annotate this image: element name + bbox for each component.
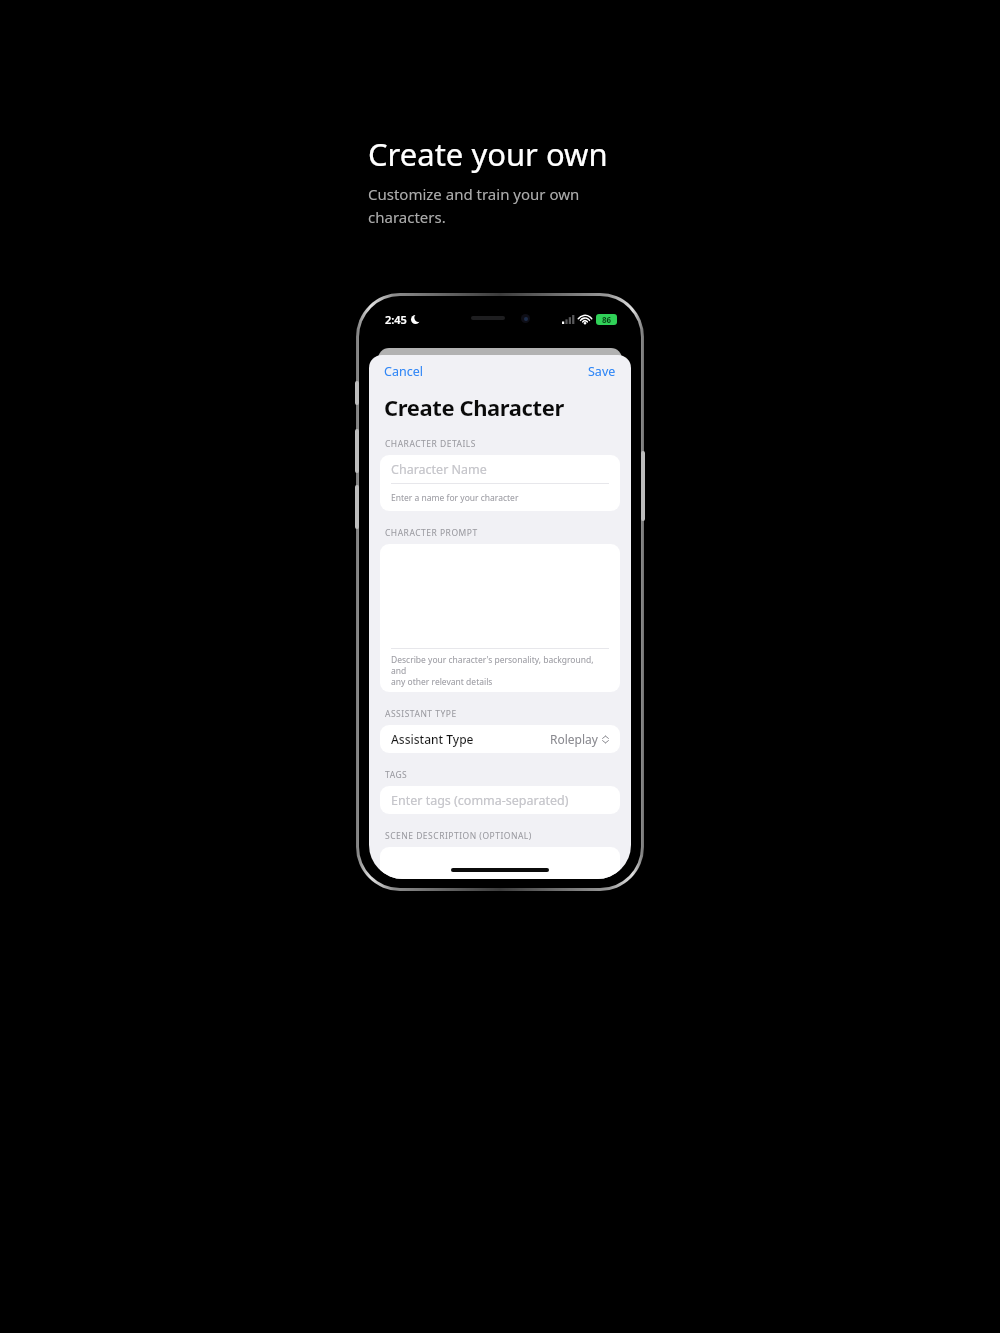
staticText: Create your own [368,133,608,175]
staticText: Roleplay [550,731,598,747]
staticText: Describe your character's personality, b… [391,654,609,687]
staticText: CHARACTER PROMPT [385,527,478,539]
staticText: Assistant Type [391,731,474,747]
staticText: Cancel [384,363,423,380]
staticText: TAGS [385,769,408,781]
other: Volume up [355,429,359,473]
staticText: Save [588,363,616,380]
other: Power [641,451,645,521]
other: Volume down [355,485,359,529]
button[interactable]: Cancel [382,359,425,384]
button[interactable]: Enter tags (comma-separated) [380,786,620,814]
button[interactable]: Assistant Type [380,725,620,753]
staticText: Enter a name for your character [391,492,519,504]
staticText: 2:45 [385,312,407,327]
button[interactable] [380,847,620,879]
staticText: Character Name [391,461,487,478]
staticText: SCENE DESCRIPTION (OPTIONAL) [385,830,532,842]
staticText: ASSISTANT TYPE [385,708,457,720]
staticText: Enter tags (comma-separated) [391,792,569,809]
staticText: CHARACTER DETAILS [385,438,476,450]
button[interactable]: Character Name [380,455,620,483]
other: Silent switch [355,381,359,405]
staticText: Create Character [384,392,564,422]
staticText: Customize and train your own characters. [368,184,580,227]
staticText: 86 [602,314,612,325]
button[interactable]: Save [586,359,618,384]
